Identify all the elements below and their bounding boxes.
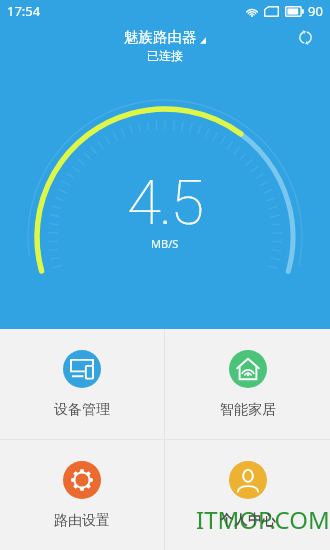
- button[interactable]: 魅族路由器: [124, 28, 206, 46]
- button[interactable]: Refresh: [289, 21, 321, 53]
- staticText: 魅族路由器: [124, 28, 197, 46]
- staticText: 设备管理: [54, 401, 110, 419]
- staticText: 路由设置: [54, 512, 110, 530]
- staticText: ITMOP.COM: [196, 503, 330, 536]
- staticText: 个人中心: [220, 511, 276, 529]
- button[interactable]: 设备管理: [0, 329, 164, 439]
- staticText: 个人中心: [220, 512, 276, 530]
- staticText: 17:54: [7, 2, 41, 20]
- staticText: 智能家居: [220, 401, 276, 419]
- button[interactable]: 智能家居: [165, 329, 330, 439]
- button[interactable]: 路由设置: [0, 440, 164, 550]
- staticText: 已连接: [147, 48, 183, 63]
- staticText: MB/S: [151, 236, 179, 251]
- button[interactable]: 个人中心: [165, 440, 330, 550]
- staticText: 90: [308, 2, 323, 20]
- staticText: 4.5: [127, 166, 203, 239]
